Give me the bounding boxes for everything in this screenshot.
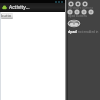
staticText: dpad [68,29,77,34]
button[interactable]: D-pad [67,19,81,28]
button[interactable]: End call [74,9,80,15]
button[interactable]: Call [67,9,73,15]
button[interactable]: button1 [1,13,13,19]
staticText: button1 [1,13,13,19]
button[interactable]: Home [68,1,74,7]
staticText: dpad buttons [68,14,87,18]
button[interactable]: Volume down [88,9,94,15]
staticText: hardware buttons [68,6,94,10]
button[interactable]: Volume up [81,9,87,15]
button[interactable]: Menu [75,1,81,7]
staticText: not enabled in avd [78,30,100,34]
button[interactable]: Back [82,1,88,7]
staticText: Activity... [9,4,30,11]
